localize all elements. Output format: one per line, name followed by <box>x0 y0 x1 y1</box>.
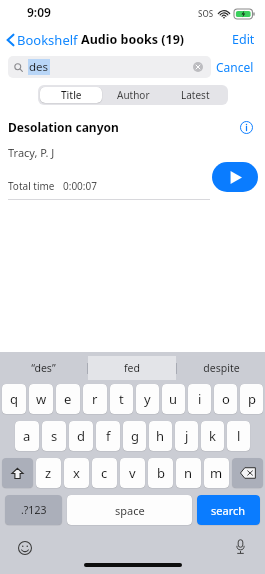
staticText: m <box>210 464 223 482</box>
staticText: .?123 <box>21 503 47 517</box>
button[interactable]: “des” <box>0 356 87 380</box>
button[interactable]: e <box>56 384 80 414</box>
staticText: s <box>51 427 58 445</box>
button[interactable]: Play <box>212 162 258 192</box>
staticText: u <box>169 390 178 408</box>
staticText: w <box>36 390 47 408</box>
button[interactable]: l <box>227 421 250 451</box>
staticText: d <box>77 427 85 445</box>
button[interactable]: c <box>92 458 117 488</box>
staticText: f <box>106 427 111 445</box>
button[interactable]: j <box>175 421 198 451</box>
button[interactable]: t <box>110 384 133 414</box>
button[interactable]: Cancel <box>211 55 259 79</box>
staticText: “des” <box>31 361 56 375</box>
staticText: n <box>184 464 193 482</box>
staticText: Audio books (19) <box>81 31 185 48</box>
button[interactable]: Edit <box>222 27 265 52</box>
button[interactable]: des <box>8 56 211 78</box>
staticText: z <box>45 464 52 482</box>
button[interactable]: v <box>120 458 145 488</box>
button[interactable]: .?123 <box>5 495 62 525</box>
staticText: space <box>115 503 145 518</box>
staticText: b <box>157 464 165 482</box>
button[interactable]: Backspace <box>232 458 263 488</box>
staticText: o <box>222 390 230 408</box>
staticText: SOS <box>198 8 214 19</box>
button[interactable]: Info <box>237 118 255 136</box>
button[interactable]: Title <box>40 87 102 103</box>
staticText: c <box>101 464 108 482</box>
button[interactable]: o <box>214 384 237 414</box>
button[interactable]: despite <box>177 356 265 380</box>
staticText: 0:00:07 <box>63 179 97 193</box>
staticText: Total time <box>8 179 55 193</box>
button[interactable]: s <box>42 421 66 451</box>
button[interactable]: k <box>201 421 224 451</box>
button[interactable]: Bookshelf <box>0 28 84 52</box>
button[interactable]: a <box>15 421 39 451</box>
staticText: g <box>131 427 139 445</box>
staticText: Tracy, P. J <box>8 145 55 160</box>
button[interactable]: h <box>149 421 172 451</box>
staticText: search <box>211 503 246 518</box>
button[interactable]: m <box>204 458 229 488</box>
button[interactable]: space <box>67 495 192 525</box>
staticText: Title <box>61 88 82 102</box>
staticText: r <box>92 390 98 408</box>
button[interactable]: Clear text <box>191 60 205 74</box>
staticText: des <box>29 59 49 75</box>
button[interactable]: search <box>197 495 260 525</box>
button[interactable]: z <box>36 458 61 488</box>
staticText: k <box>209 427 216 445</box>
staticText: y <box>144 390 151 408</box>
staticText: despite <box>203 361 240 375</box>
button[interactable]: p <box>240 384 263 414</box>
button[interactable]: q <box>2 384 26 414</box>
button[interactable]: Latest <box>164 87 226 103</box>
button[interactable]: Dictation <box>229 535 251 557</box>
staticText: i <box>198 390 202 408</box>
staticText: a <box>23 427 31 445</box>
button[interactable]: r <box>83 384 107 414</box>
button[interactable]: u <box>162 384 185 414</box>
staticText: Author <box>117 88 150 102</box>
button[interactable]: b <box>148 458 173 488</box>
staticText: p <box>248 390 256 408</box>
staticText: Latest <box>181 88 210 102</box>
staticText: Bookshelf <box>17 31 78 49</box>
button[interactable]: Shift <box>2 458 33 488</box>
staticText: fed <box>124 361 140 375</box>
button[interactable]: w <box>29 384 53 414</box>
staticText: 9:09 <box>27 4 51 20</box>
staticText: x <box>73 464 80 482</box>
staticText: j <box>185 427 189 445</box>
button[interactable]: f <box>96 421 120 451</box>
button[interactable]: Emoji <box>14 537 36 559</box>
button[interactable]: d <box>69 421 93 451</box>
staticText: v <box>129 464 136 482</box>
button[interactable]: x <box>64 458 89 488</box>
button[interactable]: y <box>136 384 159 414</box>
staticText: h <box>156 427 165 445</box>
staticText: Desolation canyon <box>8 119 119 135</box>
staticText: q <box>10 390 18 408</box>
staticText: e <box>64 390 72 408</box>
button[interactable]: fed <box>88 356 176 380</box>
staticText: l <box>237 427 241 445</box>
button[interactable]: Desolation canyon <box>0 115 265 201</box>
button[interactable]: Author <box>102 87 164 103</box>
button[interactable]: i <box>188 384 211 414</box>
button[interactable]: g <box>123 421 146 451</box>
button[interactable]: n <box>176 458 201 488</box>
staticText: t <box>119 390 124 408</box>
